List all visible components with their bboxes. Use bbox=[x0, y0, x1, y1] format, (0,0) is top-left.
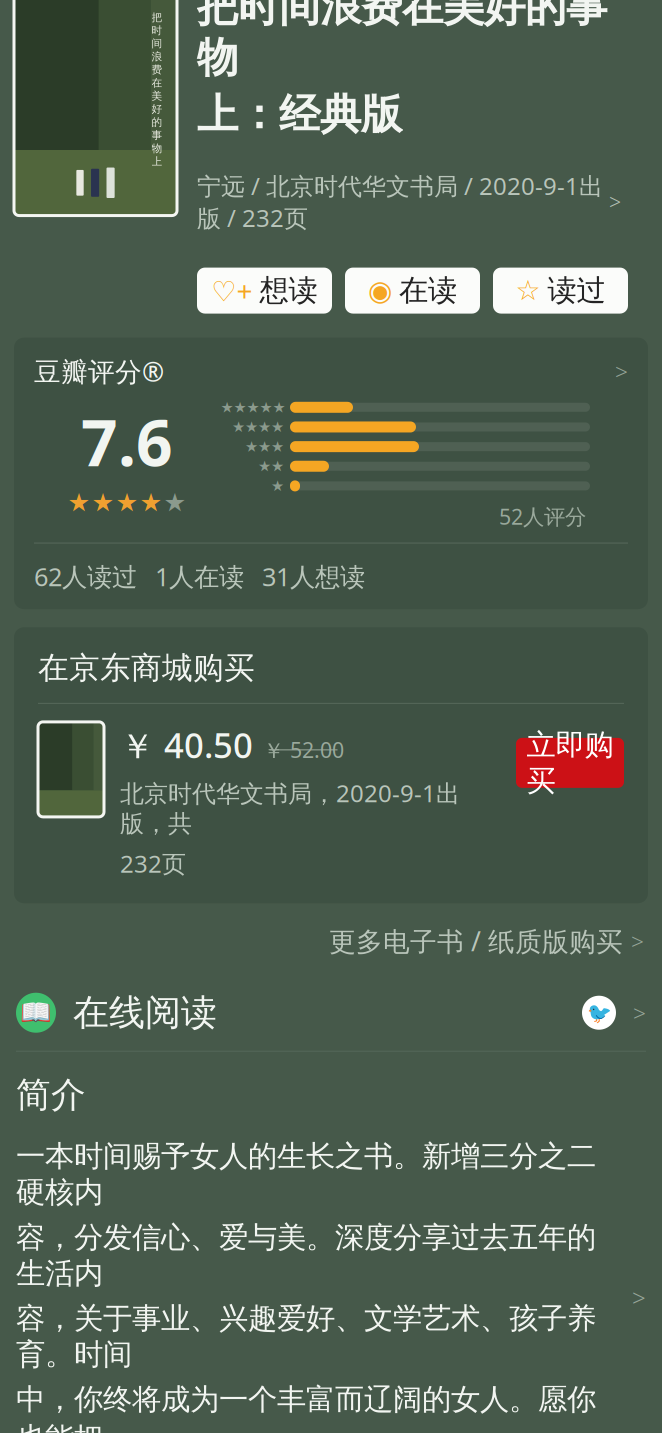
staticText: 北京时代华文书局，2020-9-1出版，共 bbox=[120, 777, 460, 838]
staticText: ★ bbox=[271, 438, 284, 455]
staticText: 更多电子书 / 纸质版购买 bbox=[329, 923, 623, 959]
staticText: ★ bbox=[258, 438, 271, 455]
staticText: ★ bbox=[258, 458, 271, 474]
staticText: > bbox=[632, 1281, 646, 1313]
button[interactable]: 宁远 / 北京时代华文书局 / 2020-9-1出版 / 232页 bbox=[197, 170, 621, 233]
staticText: ★ bbox=[163, 488, 186, 517]
staticText: 在京东商城购买 bbox=[38, 649, 255, 687]
staticText: 在读 bbox=[399, 273, 457, 309]
staticText: ★ bbox=[271, 458, 284, 474]
staticText: 🐦 bbox=[586, 1001, 611, 1024]
staticText: ★ bbox=[271, 478, 284, 494]
staticText: ★ bbox=[259, 399, 272, 416]
staticText: ★ bbox=[220, 399, 233, 416]
button[interactable]: 📖 bbox=[0, 975, 662, 1051]
staticText: ￥ 40.50 bbox=[120, 722, 253, 768]
staticText: 62人读过 bbox=[34, 560, 137, 593]
button[interactable]: ◉ bbox=[345, 268, 480, 314]
staticText: > bbox=[631, 926, 644, 956]
staticText: 容，分发信心、爱与美。深度分享过去五年的生活内 bbox=[16, 1219, 596, 1291]
button[interactable]: ☆ bbox=[493, 268, 628, 314]
staticText: ★ bbox=[91, 488, 114, 517]
staticText: ★ bbox=[115, 488, 138, 517]
staticText: ★ bbox=[245, 438, 258, 455]
staticText: 31人想读 bbox=[262, 560, 365, 593]
staticText: 📖 bbox=[20, 998, 52, 1027]
staticText: 一本时间赐予女人的生长之书。新增三分之二硬核内 bbox=[16, 1138, 596, 1210]
staticText: > bbox=[609, 187, 621, 216]
staticText: 容，关于事业、兴趣爱好、文学艺术、孩子养育。时间 bbox=[16, 1300, 596, 1372]
staticText: ★ bbox=[232, 419, 245, 435]
staticText: ★ bbox=[271, 419, 284, 435]
staticText: 把时间浪费在美好的事物上 bbox=[151, 11, 162, 168]
staticText: ★ bbox=[67, 488, 90, 517]
staticText: 中，你终将成为一个丰富而辽阔的女人。愿你也能把... bbox=[16, 1381, 596, 1433]
staticText: 52人评分 bbox=[499, 502, 586, 530]
staticText: 想读 bbox=[259, 273, 317, 309]
staticText: 立即购买 bbox=[526, 727, 613, 799]
staticText: 读过 bbox=[547, 273, 605, 309]
staticText: 7.6 bbox=[81, 399, 173, 484]
staticText: 宁远 / 北京时代华文书局 / 2020-9-1出版 / 232页 bbox=[197, 170, 603, 233]
staticText: ★ bbox=[139, 488, 162, 517]
staticText: 把时间浪费在美好的事物 bbox=[197, 0, 607, 83]
button[interactable]: 简介 bbox=[0, 1052, 662, 1433]
staticText: ★ bbox=[272, 399, 285, 416]
staticText: ☆ bbox=[515, 275, 540, 306]
staticText: > bbox=[615, 356, 628, 386]
staticText: ★ bbox=[233, 399, 246, 416]
staticText: ★ bbox=[245, 419, 258, 435]
button[interactable]: 更多电子书 / 纸质版购买 bbox=[0, 903, 662, 965]
staticText: 简介 bbox=[16, 1074, 86, 1116]
staticText: ◉ bbox=[368, 275, 392, 306]
staticText: 232页 bbox=[120, 847, 186, 879]
staticText: > bbox=[633, 998, 646, 1028]
staticText: 在线阅读 bbox=[73, 991, 217, 1035]
staticText: ★ bbox=[258, 419, 271, 435]
staticText: 1人在读 bbox=[155, 560, 244, 593]
button[interactable]: 立即购买 bbox=[516, 738, 624, 788]
staticText: ★ bbox=[246, 399, 259, 416]
staticText: 豆瓣评分® bbox=[34, 354, 164, 389]
button[interactable]: 豆瓣评分® bbox=[14, 338, 648, 609]
staticText: ♡+ bbox=[211, 272, 252, 309]
staticText: ￥ 52.00 bbox=[263, 736, 344, 764]
staticText: 上：经典版 bbox=[197, 89, 402, 140]
button[interactable]: ♡+ bbox=[197, 268, 332, 314]
